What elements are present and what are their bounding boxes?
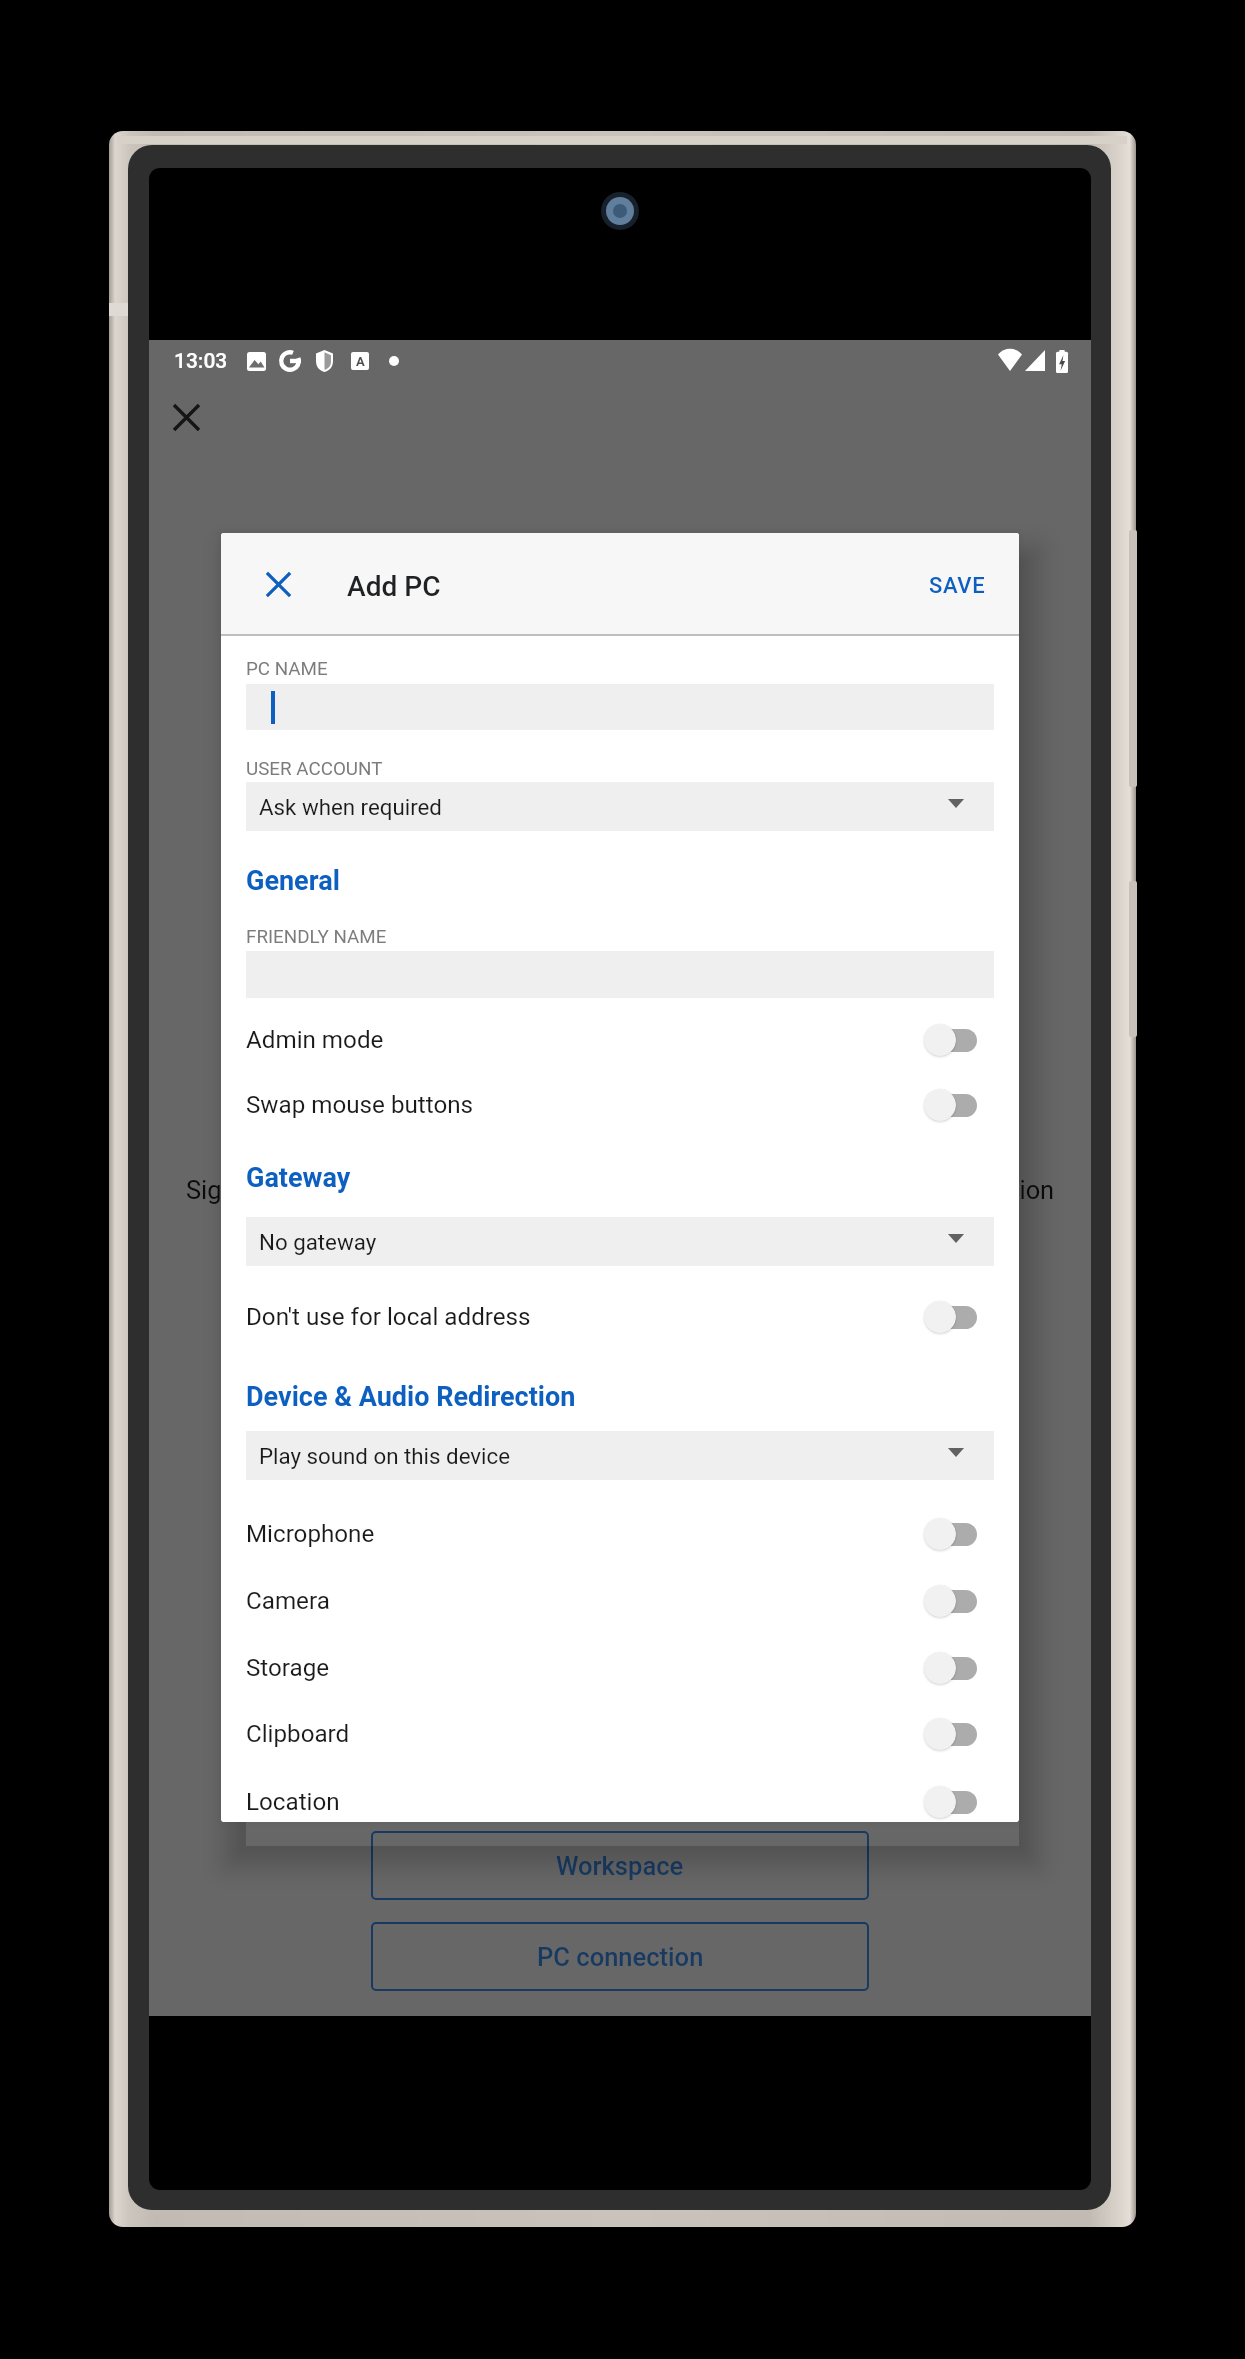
staticText: Clipboard	[246, 1720, 350, 1748]
staticText: Gateway	[246, 1162, 351, 1194]
button[interactable]: Ask when required	[246, 782, 994, 831]
button[interactable]: Swap mouse buttons	[246, 1072, 994, 1138]
staticText: 13:03	[174, 349, 228, 374]
button[interactable]: Workspace	[371, 1831, 869, 1900]
staticText: USER ACCOUNT	[246, 758, 383, 780]
button[interactable]: Location	[246, 1769, 994, 1822]
button[interactable]: SAVE	[901, 535, 1019, 637]
staticText: No gateway	[259, 1229, 377, 1255]
staticText: SAVE	[929, 573, 986, 599]
button[interactable]: Clipboard	[246, 1701, 994, 1767]
button[interactable]: PC connection	[371, 1922, 869, 1991]
staticText: Storage	[246, 1654, 330, 1682]
button[interactable]: No gateway	[246, 1217, 994, 1266]
staticText: Ask when required	[259, 794, 442, 820]
staticText: Add PC	[347, 570, 441, 603]
staticText: FRIENDLY NAME	[246, 926, 387, 948]
staticText: Device & Audio Redirection	[246, 1381, 576, 1413]
staticText: Don't use for local address	[246, 1303, 531, 1331]
button[interactable]: Don't use for local address	[246, 1284, 994, 1350]
button[interactable]: Camera	[246, 1568, 994, 1634]
staticText: PC connection	[537, 1942, 704, 1972]
button[interactable]: Play sound on this device	[246, 1431, 994, 1480]
staticText: PC NAME	[246, 658, 328, 680]
staticText: Microphone	[246, 1520, 375, 1548]
staticText: General	[246, 865, 340, 897]
button[interactable]: Close	[156, 387, 216, 447]
button[interactable]: Admin mode	[246, 1007, 994, 1073]
staticText: Sign in with your work or school account…	[186, 1175, 1055, 1205]
button[interactable]: Close dialog	[230, 533, 326, 635]
button[interactable]	[246, 684, 994, 730]
staticText: Swap mouse buttons	[246, 1091, 474, 1119]
staticText: Camera	[246, 1587, 330, 1615]
button[interactable]: Storage	[246, 1635, 994, 1701]
staticText: Location	[246, 1788, 340, 1816]
staticText: Admin mode	[246, 1026, 384, 1054]
staticText: A	[356, 354, 365, 369]
button[interactable]: Microphone	[246, 1501, 994, 1567]
staticText: Workspace	[556, 1851, 684, 1881]
staticText: Play sound on this device	[259, 1443, 511, 1469]
